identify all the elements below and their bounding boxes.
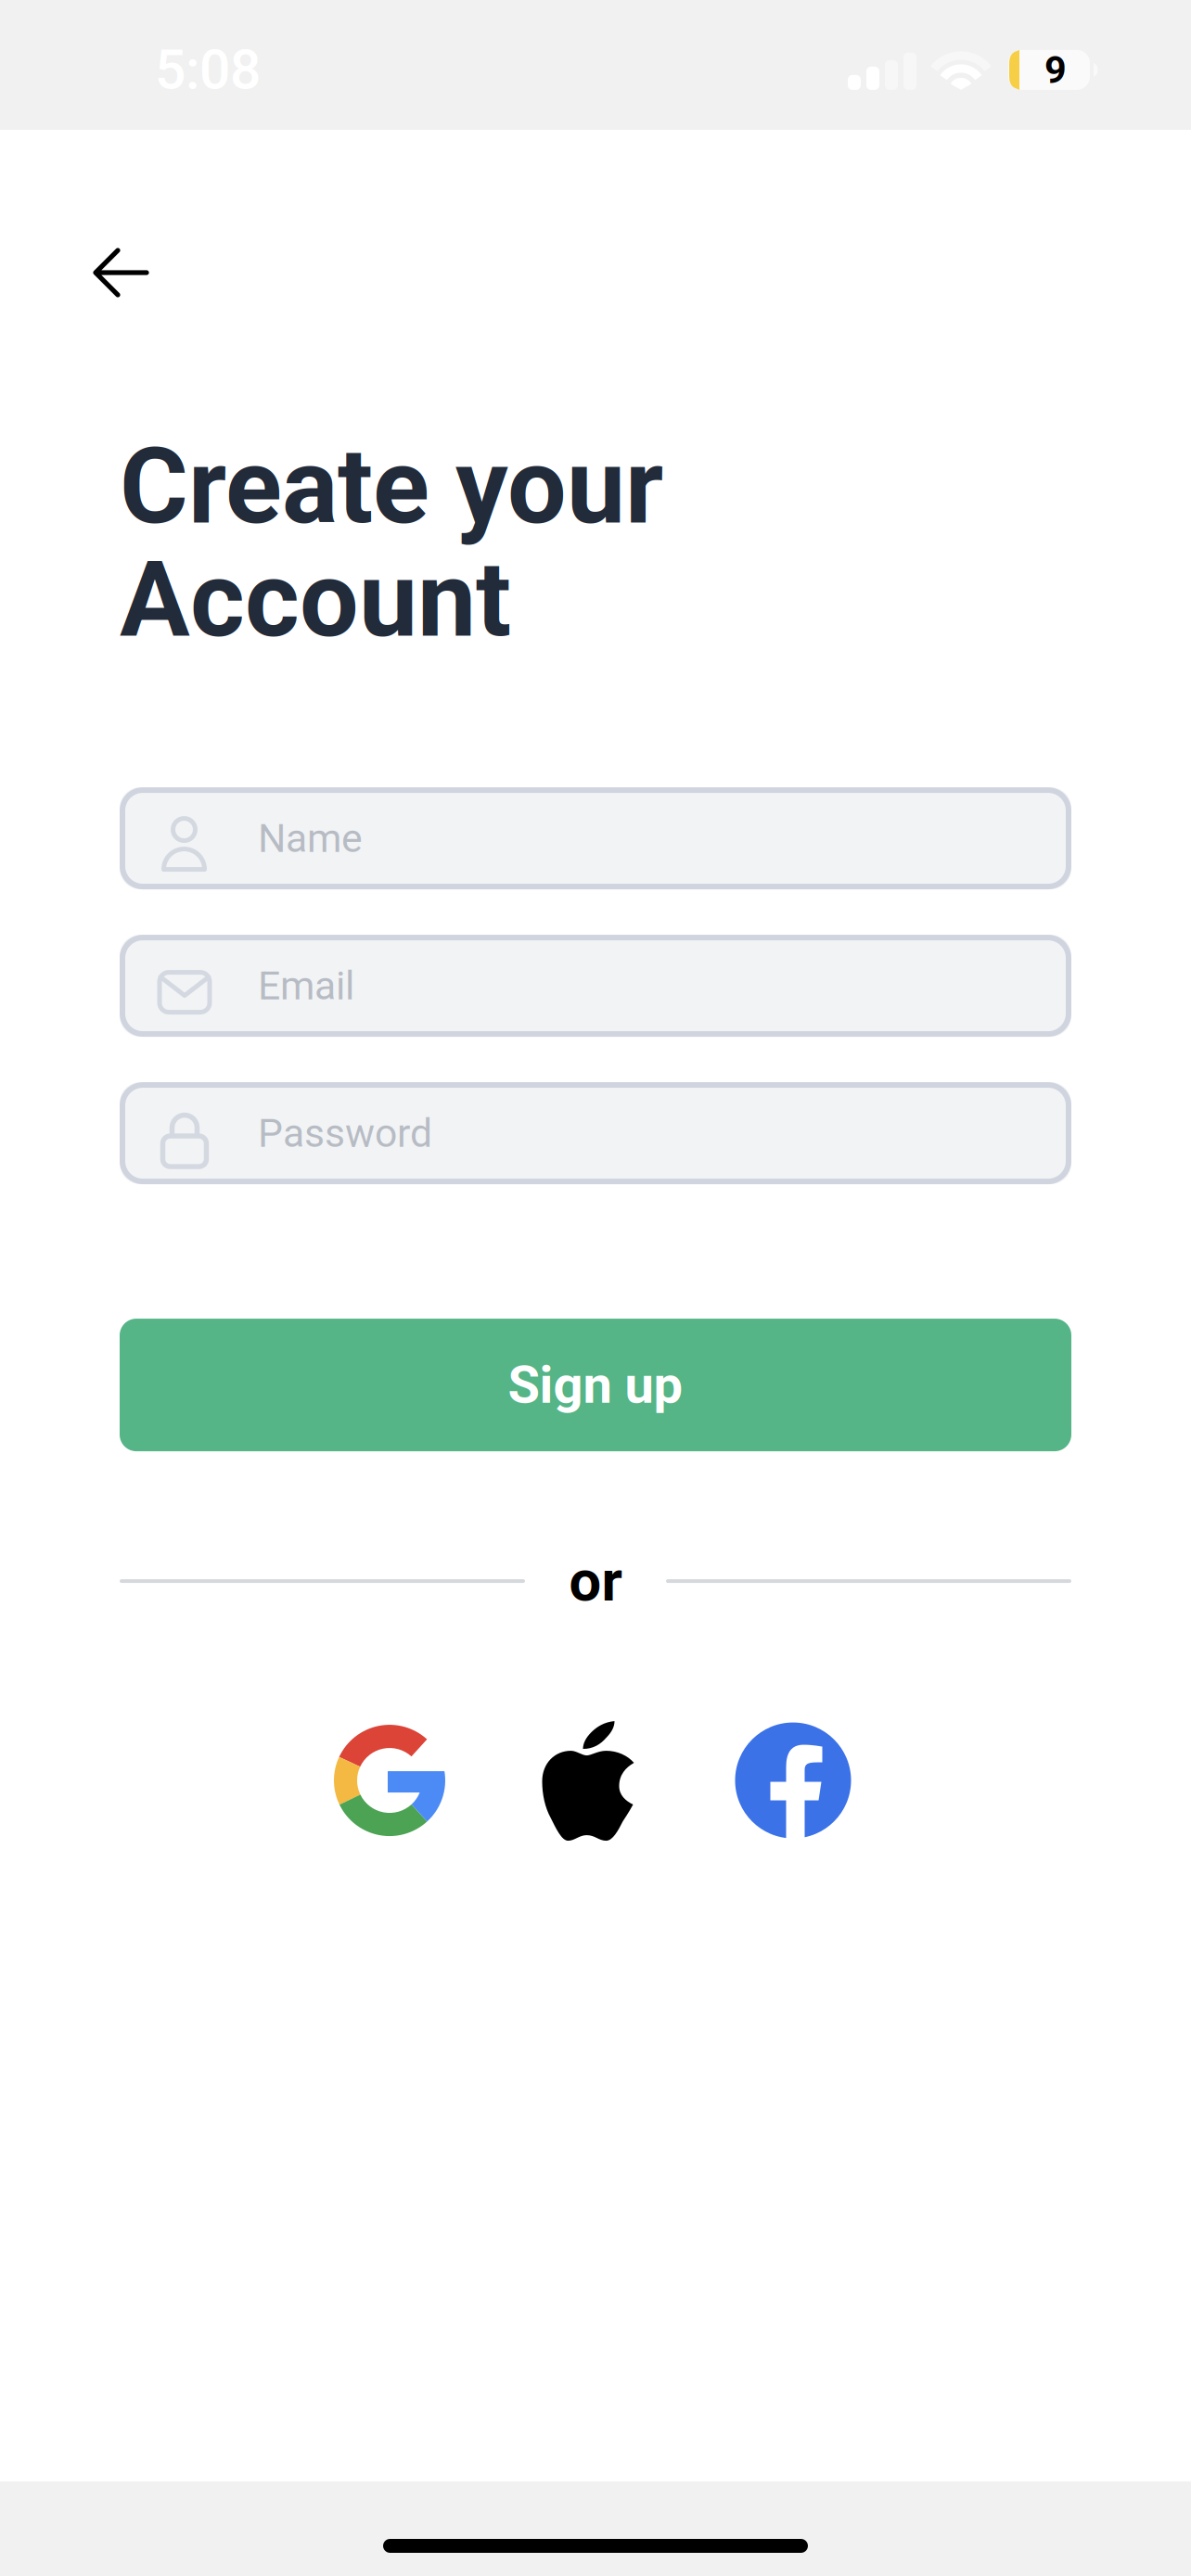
button[interactable]: Sign up with Google: [306, 1711, 473, 1850]
button[interactable]: Email: [120, 935, 1071, 1037]
staticText: Create your Account: [120, 426, 663, 661]
button[interactable]: Sign up with Facebook: [701, 1711, 885, 1850]
staticText: Sign up: [508, 1355, 683, 1415]
staticText: Password: [258, 1110, 432, 1156]
button[interactable]: Back: [70, 222, 172, 324]
staticText: Name: [258, 815, 363, 862]
button[interactable]: Sign up with Apple: [473, 1711, 701, 1850]
staticText: or: [569, 1548, 622, 1614]
staticText: 5:08: [155, 38, 261, 102]
staticText: 9: [1044, 47, 1067, 92]
button[interactable]: Password: [120, 1082, 1071, 1184]
button[interactable]: Name: [120, 787, 1071, 889]
button[interactable]: Sign up: [120, 1319, 1071, 1451]
staticText: Email: [258, 963, 354, 1009]
